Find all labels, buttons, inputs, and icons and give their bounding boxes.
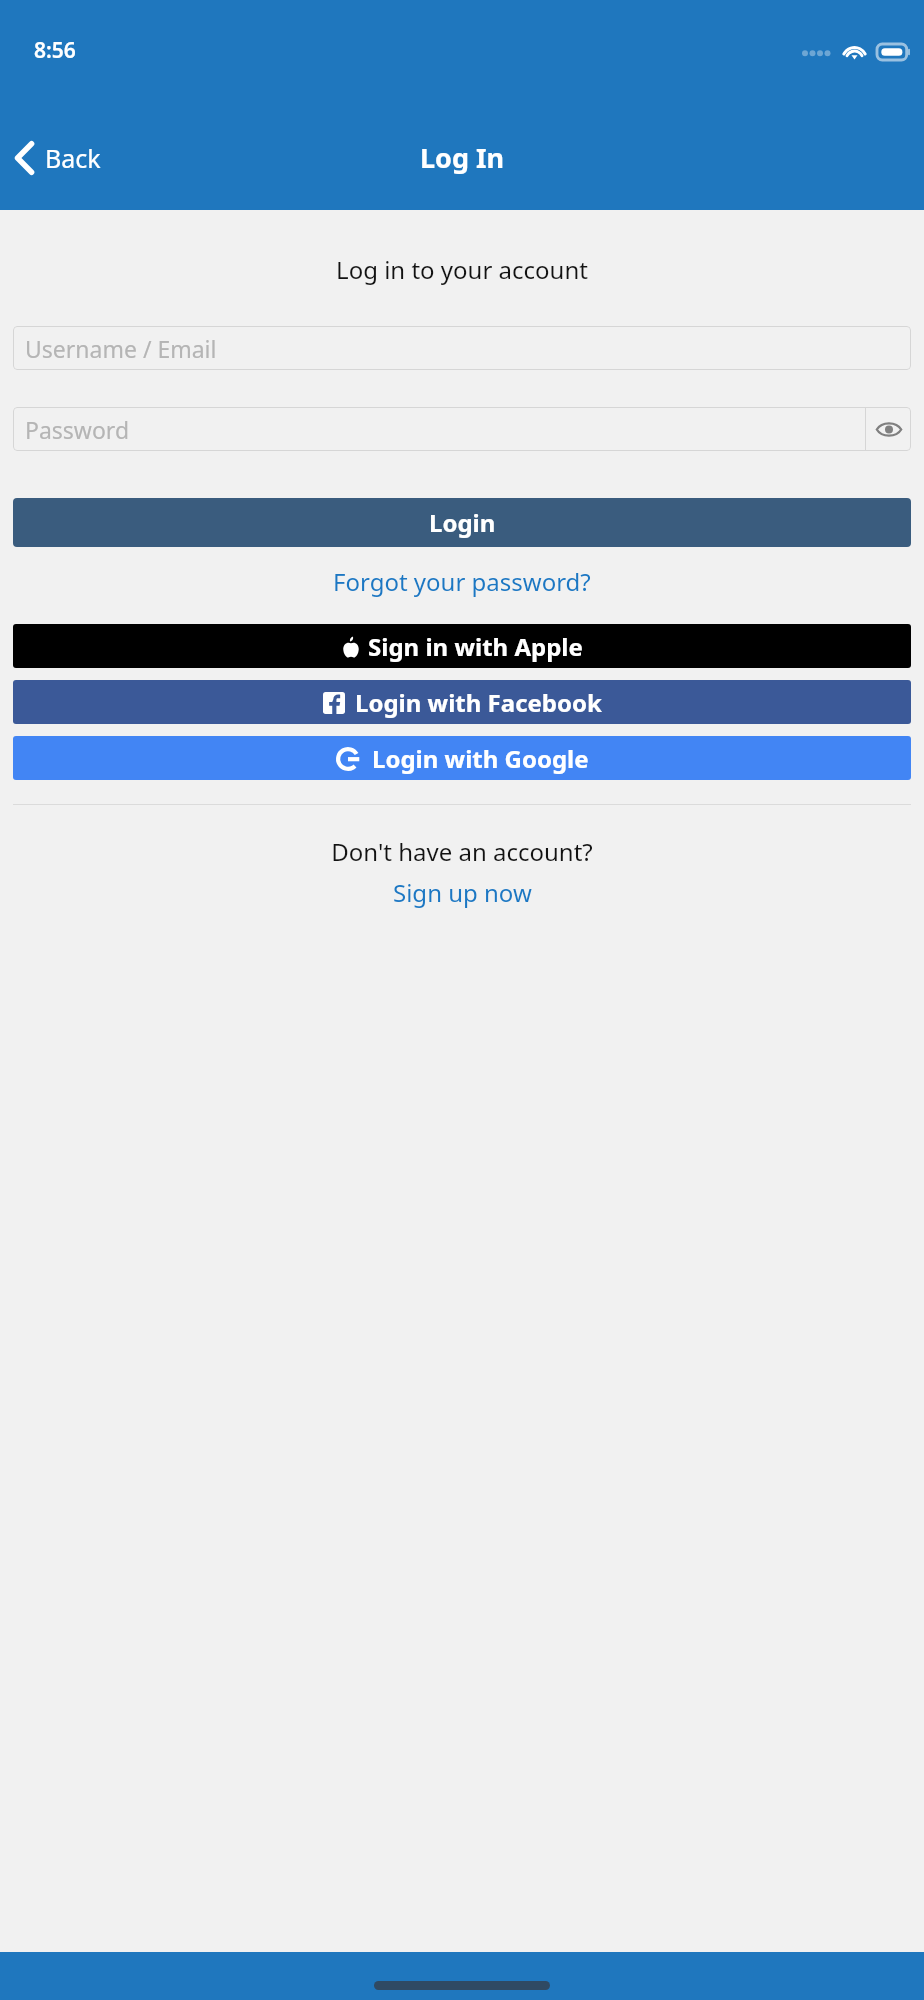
staticText: Sign up now [393, 876, 532, 909]
staticText: Log in to your account [0, 253, 924, 286]
button[interactable]: Password [13, 407, 865, 451]
button[interactable]: Username / Email [13, 326, 911, 370]
staticText: Sign in with Apple [368, 630, 583, 663]
button[interactable]: Login with Facebook [13, 680, 911, 724]
staticText: 8:56 [34, 36, 76, 65]
button[interactable]: Back [0, 133, 117, 183]
button[interactable]: Sign in with Apple [13, 624, 911, 668]
staticText: Forgot your password? [333, 565, 591, 598]
staticText: Login with Facebook [355, 686, 602, 719]
staticText: Username / Email [25, 333, 217, 364]
staticText: Password [25, 414, 130, 445]
button[interactable]: Login with Google [13, 736, 911, 780]
staticText: Don't have an account? [0, 835, 924, 868]
staticText: Login [429, 506, 496, 539]
staticText: Back [45, 141, 101, 175]
button[interactable]: Login [13, 498, 911, 547]
staticText: Log In [420, 139, 505, 176]
button[interactable]: Forgot your password? [321, 561, 603, 602]
staticText: Login with Google [372, 742, 589, 775]
button[interactable]: Show password [866, 407, 911, 451]
button[interactable]: Sign up now [381, 874, 544, 911]
